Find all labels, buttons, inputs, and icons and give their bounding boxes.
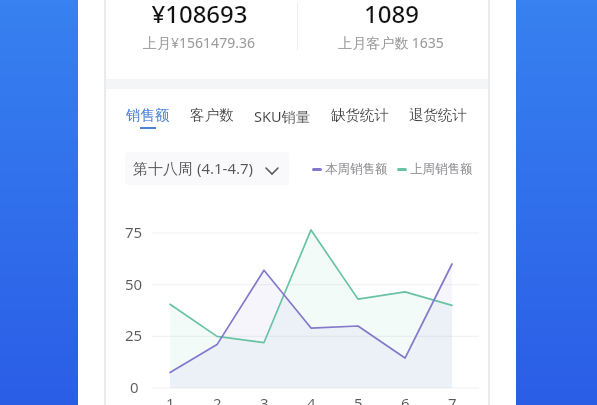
staticText: 上月客户数 1635 bbox=[338, 33, 444, 52]
staticText: 1 bbox=[166, 393, 175, 405]
staticText: 销售额 bbox=[126, 106, 170, 124]
staticText: 4 bbox=[307, 393, 316, 405]
staticText: 3 bbox=[260, 393, 269, 405]
staticText: 上周销售额 bbox=[410, 161, 473, 177]
staticText: 上月¥1561479.36 bbox=[143, 33, 255, 52]
button[interactable]: SKU销量 bbox=[254, 106, 311, 131]
staticText: SKU销量 bbox=[254, 106, 311, 126]
staticText: 0 bbox=[130, 377, 139, 397]
button[interactable]: 退货统计 bbox=[409, 106, 467, 129]
staticText: ¥108693 bbox=[151, 0, 248, 30]
button[interactable]: 销售额 bbox=[126, 106, 170, 129]
staticText: 客户数 bbox=[190, 106, 234, 124]
staticText: 7 bbox=[448, 393, 457, 405]
staticText: 6 bbox=[401, 393, 410, 405]
staticText: 5 bbox=[354, 393, 363, 405]
staticText: 25 bbox=[125, 325, 143, 345]
button[interactable]: 第十八周 (4.1-4.7) bbox=[125, 152, 289, 185]
staticText: 退货统计 bbox=[409, 106, 467, 124]
button[interactable]: 上周销售额 bbox=[397, 161, 473, 177]
staticText: 缺货统计 bbox=[331, 106, 389, 124]
staticText: 本周销售额 bbox=[325, 161, 388, 177]
button[interactable]: 缺货统计 bbox=[331, 106, 389, 129]
staticText: 2 bbox=[213, 393, 222, 405]
staticText: 50 bbox=[125, 274, 143, 294]
staticText: 第十八周 (4.1-4.7) bbox=[133, 158, 254, 178]
staticText: 75 bbox=[125, 222, 143, 242]
button[interactable]: 本周销售额 bbox=[312, 161, 388, 177]
button[interactable]: 客户数 bbox=[190, 106, 234, 129]
staticText: 1089 bbox=[364, 0, 419, 30]
